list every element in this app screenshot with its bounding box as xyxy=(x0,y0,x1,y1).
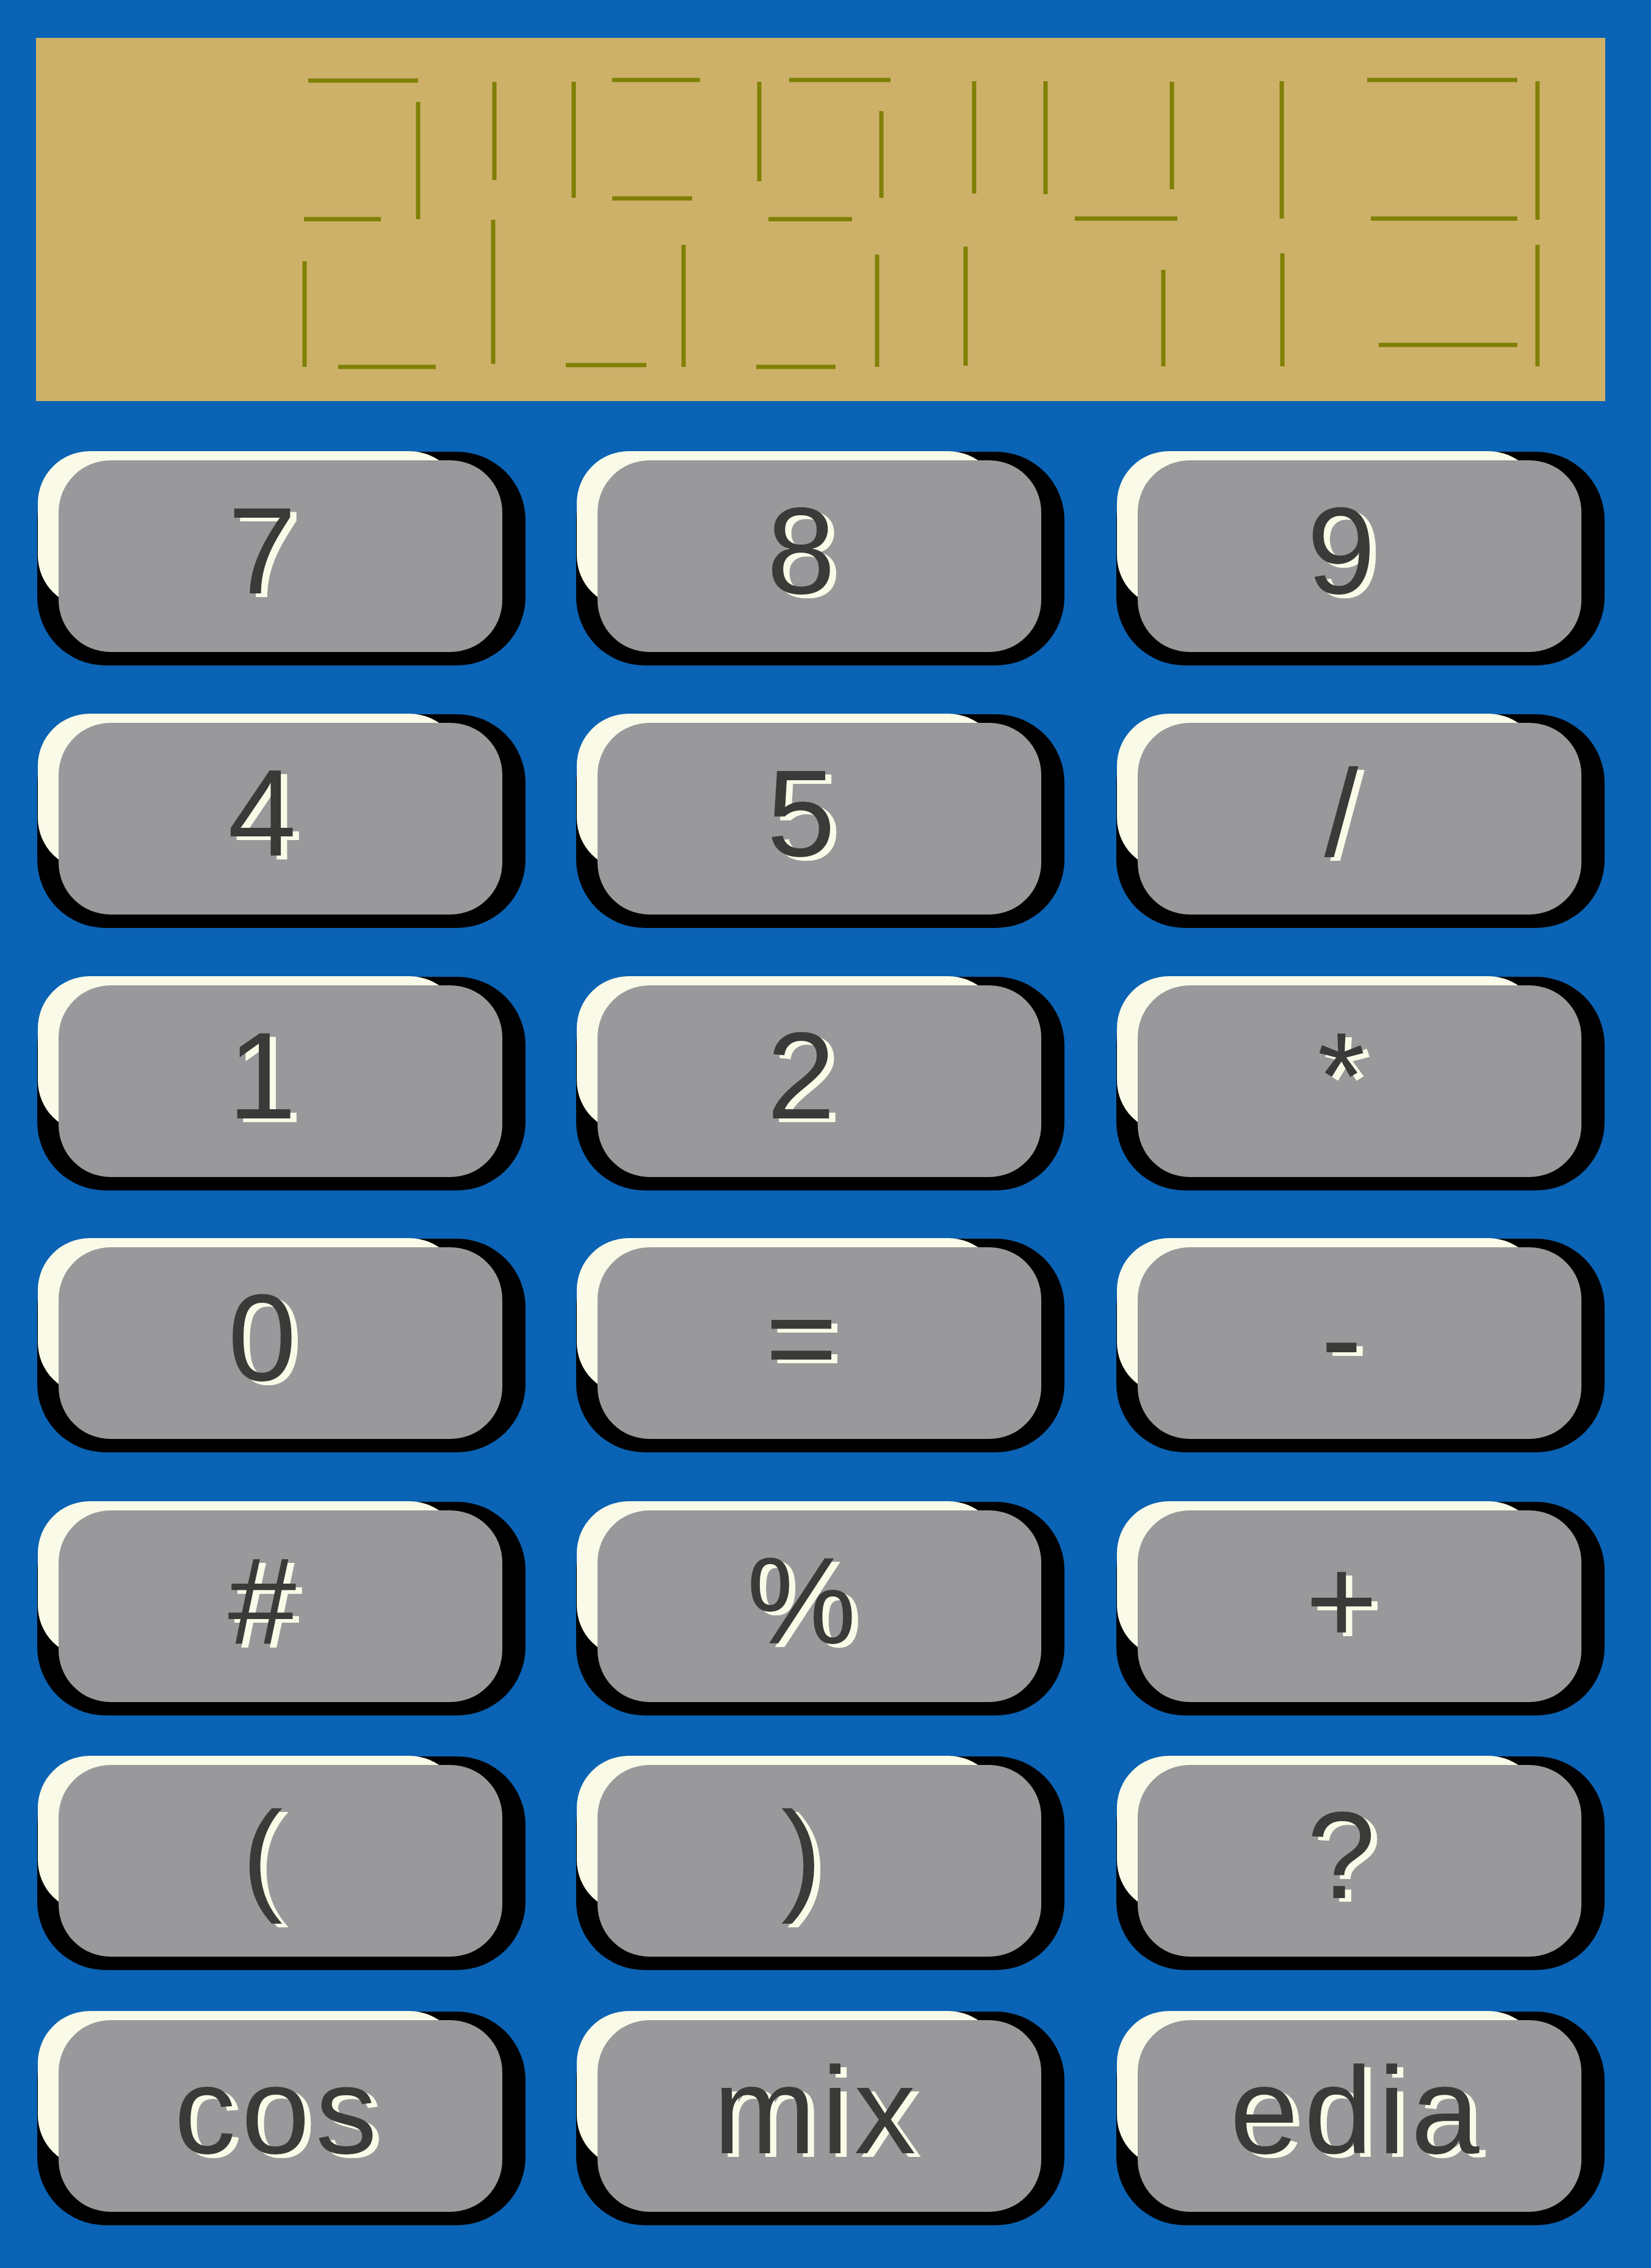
staticText: 2 xyxy=(767,1007,836,1145)
staticText: % xyxy=(746,1532,856,1670)
staticText: 9 xyxy=(1307,482,1376,620)
staticText: 4 xyxy=(228,744,297,882)
button[interactable]: % xyxy=(577,1501,1065,1715)
button[interactable]: 9 xyxy=(1117,451,1605,665)
button[interactable]: edia xyxy=(1117,2011,1605,2225)
staticText: edia xyxy=(1230,2042,1485,2179)
staticText: 7 xyxy=(234,485,303,623)
staticText: = xyxy=(771,1272,844,1410)
staticText: mix xyxy=(719,2045,928,2183)
button[interactable]: + xyxy=(1117,1501,1605,1715)
staticText: 7 xyxy=(228,482,297,620)
staticText: # xyxy=(228,1532,297,1670)
staticText: edia xyxy=(1236,2045,1491,2183)
button[interactable]: cos xyxy=(38,2011,526,2225)
button[interactable]: = xyxy=(577,1238,1065,1452)
button[interactable]: # xyxy=(38,1501,526,1715)
staticText: mix xyxy=(713,2042,922,2179)
staticText: ? xyxy=(1307,1786,1376,1924)
staticText: 5 xyxy=(767,744,836,882)
button[interactable]: 4 xyxy=(38,714,526,928)
staticText: + xyxy=(1312,1535,1384,1673)
button[interactable]: 1 xyxy=(38,976,526,1190)
button[interactable]: / xyxy=(1117,714,1605,928)
staticText: cos xyxy=(180,2045,389,2183)
staticText: 2 xyxy=(773,1010,842,1148)
button[interactable]: 8 xyxy=(577,451,1065,665)
staticText: - xyxy=(1327,1272,1368,1410)
staticText: ( xyxy=(242,1786,283,1924)
button[interactable]: ( xyxy=(38,1756,526,1970)
staticText: * xyxy=(1317,1007,1365,1145)
staticText: - xyxy=(1321,1269,1362,1407)
staticText: # xyxy=(234,1535,303,1673)
button[interactable]: ) xyxy=(577,1756,1065,1970)
button[interactable]: 7 xyxy=(38,451,526,665)
staticText: cos xyxy=(174,2042,383,2179)
button[interactable]: ? xyxy=(1117,1756,1605,1970)
staticText: 8 xyxy=(767,482,836,620)
button[interactable]: 5 xyxy=(577,714,1065,928)
staticText: ( xyxy=(248,1790,289,1928)
staticText: = xyxy=(765,1269,837,1407)
staticText: / xyxy=(1330,748,1365,886)
staticText: + xyxy=(1306,1532,1378,1670)
staticText: 8 xyxy=(773,485,842,623)
staticText: % xyxy=(753,1535,862,1673)
staticText: 1 xyxy=(228,1007,297,1145)
staticText: 5 xyxy=(773,748,842,886)
staticText: 4 xyxy=(234,748,303,886)
staticText: * xyxy=(1323,1010,1371,1148)
staticText: 0 xyxy=(234,1272,303,1410)
staticText: 0 xyxy=(228,1269,297,1407)
button[interactable]: 2 xyxy=(577,976,1065,1190)
button[interactable]: * xyxy=(1117,976,1605,1190)
staticText: 1 xyxy=(234,1010,303,1148)
button[interactable]: mix xyxy=(577,2011,1065,2225)
staticText: 9 xyxy=(1313,485,1382,623)
staticText: ? xyxy=(1313,1790,1382,1928)
button[interactable]: - xyxy=(1117,1238,1605,1452)
staticText: ) xyxy=(787,1790,828,1928)
button[interactable]: 0 xyxy=(38,1238,526,1452)
staticText: ) xyxy=(781,1786,822,1924)
staticText: / xyxy=(1324,744,1359,882)
